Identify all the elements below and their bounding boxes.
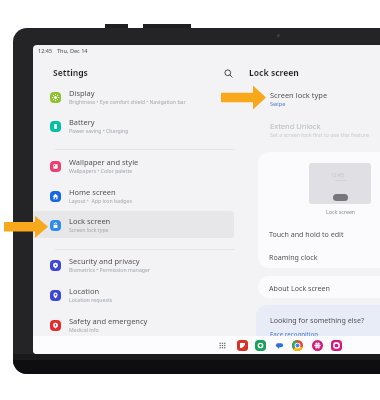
- staticText: Extend Unlock: [270, 121, 321, 131]
- staticText: Battery: [69, 117, 95, 127]
- button[interactable]: Extend Unlock: [258, 118, 380, 144]
- button[interactable]: Lock screen: [33, 212, 234, 239]
- button[interactable]: Wallpaper and style: [33, 153, 234, 180]
- staticText: Display: [69, 88, 95, 98]
- staticText: Face recognition: [270, 330, 319, 338]
- staticText: Layout • App icon badges: [69, 197, 132, 204]
- staticText: Thu, Dec 14: [57, 47, 88, 54]
- staticText: Screen lock type: [69, 226, 109, 233]
- staticText: Swipe: [270, 100, 286, 107]
- staticText: Medical info: [69, 326, 99, 333]
- staticText: Safety and emergency: [69, 316, 148, 326]
- staticText: Lock screen: [249, 67, 299, 79]
- staticText: Home screen: [69, 187, 116, 197]
- button[interactable]: Search: [219, 64, 237, 82]
- staticText: Roaming clock: [269, 252, 318, 262]
- staticText: Touch and hold to edit: [269, 229, 344, 239]
- staticText: Screen lock type: [270, 90, 328, 100]
- button[interactable]: All apps: [214, 337, 230, 353]
- staticText: Power saving • Charging: [69, 127, 129, 134]
- button[interactable]: Roaming clock: [258, 245, 380, 268]
- button[interactable]: flower: [309, 337, 325, 353]
- staticText: 12:45: [38, 47, 53, 54]
- staticText: Set a screen lock first to use this feat…: [270, 131, 370, 138]
- button[interactable]: chrome: [289, 337, 305, 353]
- staticText: Looking for something else?: [270, 315, 365, 325]
- staticText: Wallpaper and style: [69, 157, 139, 167]
- button[interactable]: messages: [271, 337, 287, 353]
- button[interactable]: office: [234, 337, 250, 353]
- button[interactable]: Display: [33, 84, 234, 111]
- button[interactable]: Screen lock type: [258, 87, 380, 113]
- button[interactable]: Home screen: [33, 183, 234, 210]
- button[interactable]: Battery: [33, 113, 234, 140]
- staticText: 12:45: [331, 172, 344, 179]
- button[interactable]: Touch and hold to edit: [258, 222, 380, 245]
- button[interactable]: About Lock screen: [258, 276, 380, 298]
- button[interactable]: spotify: [252, 337, 268, 353]
- staticText: Location: [69, 286, 100, 296]
- staticText: Wallpapers • Color palette: [69, 167, 133, 174]
- staticText: Location requests: [69, 296, 113, 303]
- button[interactable]: Location: [33, 282, 234, 309]
- staticText: About Lock screen: [269, 283, 330, 293]
- staticText: Settings: [53, 67, 88, 79]
- button[interactable]: Looking for something else?: [256, 305, 380, 354]
- button[interactable]: Safety and emergency: [33, 312, 234, 339]
- staticText: Brightness • Eye comfort shield • Naviga…: [69, 98, 186, 105]
- staticText: Biometrics • Permission manager: [69, 266, 151, 273]
- button[interactable]: insta: [328, 337, 344, 353]
- staticText: Lock screen: [326, 208, 356, 215]
- staticText: Security and privacy: [69, 256, 140, 266]
- staticText: Lock screen: [69, 216, 111, 226]
- button[interactable]: Security and privacy: [33, 252, 234, 279]
